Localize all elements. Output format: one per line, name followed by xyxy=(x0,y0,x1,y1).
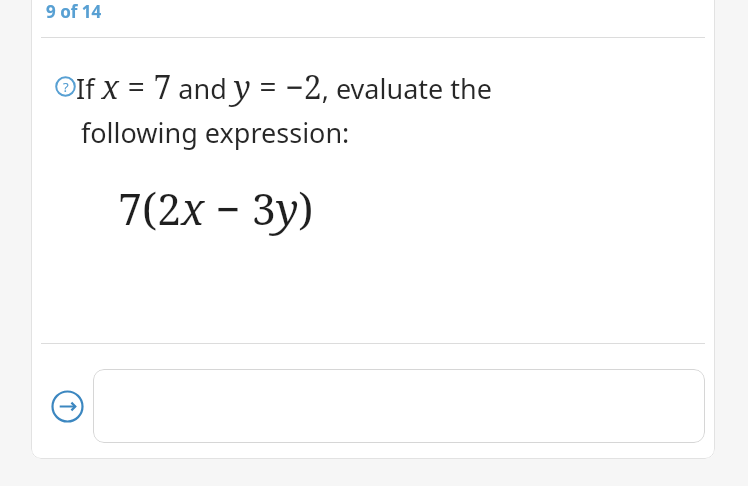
staticText: 7(2x − 3y) xyxy=(118,179,314,238)
button[interactable] xyxy=(93,369,705,443)
staticText: ? xyxy=(63,78,69,96)
staticText: following expression: xyxy=(81,114,350,151)
staticText: 9 of 14 xyxy=(46,0,102,23)
button[interactable]: Submit answer xyxy=(51,390,84,423)
staticText: If x = 7 and y = −2, evaluate the xyxy=(76,65,492,109)
button[interactable]: Help xyxy=(55,76,76,97)
